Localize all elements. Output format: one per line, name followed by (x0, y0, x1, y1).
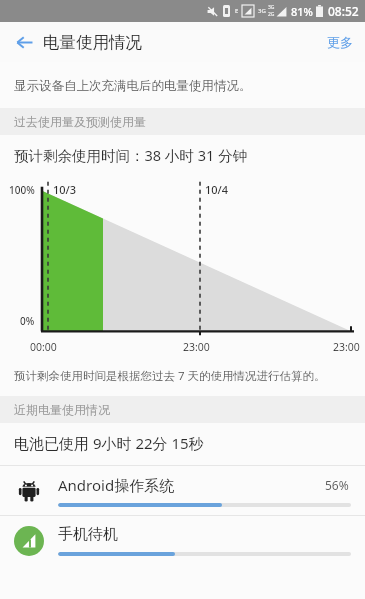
staticText: Android操作系统 (58, 475, 325, 495)
staticText: 2G (268, 11, 275, 18)
staticText: 预计剩余使用时间是根据您过去 7 天的使用情况进行估算的。 (14, 368, 326, 384)
button[interactable]: 更多 (315, 26, 365, 58)
button[interactable]: 手机待机 (0, 516, 365, 565)
staticText: 0% (20, 314, 35, 328)
staticText: 更多 (327, 34, 353, 50)
staticText: 显示设备自上次充满电后的电量使用情况。 (14, 78, 252, 94)
button[interactable]: Android操作系统 (0, 466, 365, 515)
staticText: 预计剩余使用时间：38 小时 31 分钟 (14, 145, 247, 165)
staticText: 23:00 (333, 340, 360, 354)
staticText: 56% (325, 477, 349, 493)
staticText: 100% (9, 183, 35, 197)
staticText: 近期电量使用情况 (14, 402, 110, 417)
staticText: 手机待机 (58, 525, 351, 544)
staticText: 过去使用量及预测使用量 (14, 114, 146, 129)
staticText: 电池已使用 9小时 22分 15秒 (14, 433, 204, 453)
button[interactable]: 返回 (6, 24, 42, 60)
staticText: 10/4 (205, 182, 229, 197)
staticText: 23:00 (183, 340, 210, 354)
staticText: 00:00 (30, 340, 57, 354)
staticText: 08:52 (328, 3, 359, 19)
staticText: 3G (268, 4, 275, 11)
staticText: 10/3 (53, 182, 77, 197)
staticText: E (235, 7, 239, 15)
staticText: 81% (291, 4, 313, 19)
staticText: 电量使用情况 (43, 32, 142, 53)
staticText: 3G (258, 7, 266, 15)
